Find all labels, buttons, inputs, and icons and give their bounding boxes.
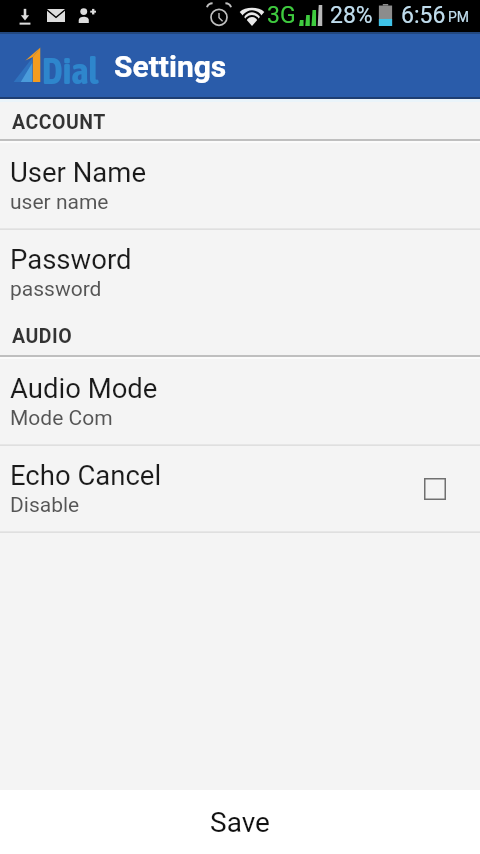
staticText: 3G <box>267 2 296 29</box>
other: Battery 28 percent <box>378 4 393 26</box>
staticText: Echo Cancel <box>10 459 162 491</box>
other: Mobile signal <box>299 5 323 26</box>
staticText: Audio Mode <box>10 372 158 404</box>
staticText: password <box>10 277 102 302</box>
staticText: Disable <box>10 493 80 518</box>
button[interactable]: Audio Mode <box>0 359 480 446</box>
other: Echo cancel toggle <box>424 478 446 500</box>
staticText: Mode Com <box>10 406 113 431</box>
button[interactable]: Echo Cancel <box>0 446 480 533</box>
staticText: Dial <box>42 49 99 89</box>
staticText: Password <box>10 243 132 275</box>
staticText: PM <box>448 9 470 25</box>
staticText: 28% <box>330 2 373 29</box>
staticText: User Name <box>10 156 147 188</box>
staticText: ACCOUNT <box>12 111 106 134</box>
staticText: Save <box>210 806 270 839</box>
staticText: 6:56 <box>401 2 446 29</box>
other: Wi-Fi connected <box>238 6 266 26</box>
staticText: AUDIO <box>12 325 73 348</box>
staticText: Settings <box>114 49 227 84</box>
button[interactable]: Save <box>0 790 480 854</box>
button[interactable]: User Name <box>0 143 480 230</box>
other: Download <box>17 8 33 25</box>
button[interactable]: Password <box>0 230 480 315</box>
staticText: user name <box>10 190 109 215</box>
other: Alarm set <box>209 5 229 26</box>
